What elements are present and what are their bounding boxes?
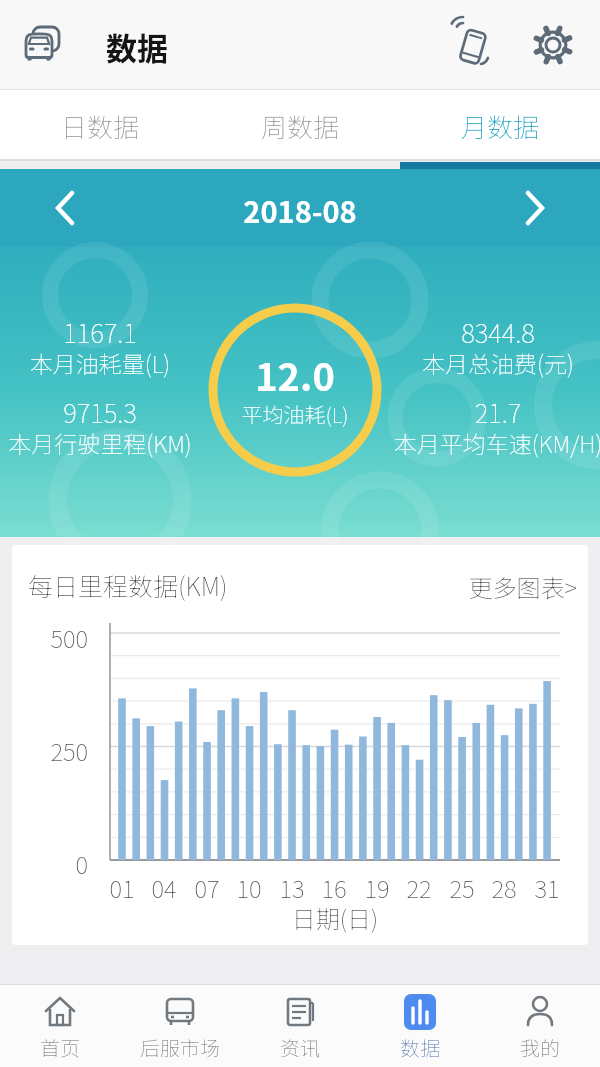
staticText: 本月总油费(元) [398,346,598,379]
staticText: 12.0 [195,347,395,402]
staticText: 数据 [360,1033,480,1062]
staticText: 2018-08 [200,189,400,231]
staticText: 首页 [0,1033,120,1062]
staticText: 31 [527,870,567,905]
button[interactable]: 更多图表> [449,569,577,601]
button[interactable] [448,18,496,72]
staticText: 250 [30,733,88,768]
staticText: 周数据 [261,107,340,145]
staticText: 本月平均车速(KM/H) [390,426,600,459]
button[interactable]: 数据 [360,985,480,1067]
staticText: 10 [229,870,269,905]
button[interactable] [530,22,576,68]
staticText: 数据 [106,24,246,69]
staticText: 我的 [480,1033,600,1062]
button[interactable]: 我的 [480,985,600,1067]
staticText: 28 [484,870,524,905]
staticText: 本月油耗量(L) [0,346,200,379]
staticText: 后服市场 [120,1033,240,1062]
button[interactable]: 资讯 [240,985,360,1067]
staticText: 07 [187,870,227,905]
staticText: 04 [144,870,184,905]
staticText: 8344.8 [398,313,598,351]
staticText: 更多图表> [449,569,577,601]
staticText: 21.7 [398,393,598,431]
staticText: 19 [357,870,397,905]
staticText: 01 [102,870,142,905]
button[interactable]: 周数据 [200,90,400,161]
button[interactable] [510,183,560,233]
staticText: 9715.3 [0,393,200,431]
staticText: 22 [399,870,439,905]
staticText: 13 [272,870,312,905]
staticText: 16 [314,870,354,905]
staticText: 日数据 [61,107,140,145]
button[interactable]: 日数据 [0,90,200,161]
button[interactable] [20,22,62,64]
staticText: 1167.1 [0,313,200,351]
staticText: 25 [442,870,482,905]
staticText: 月数据 [461,107,540,145]
button[interactable] [40,183,90,233]
staticText: 平均油耗(L) [195,399,395,429]
staticText: 0 [30,846,88,881]
staticText: 日期(日) [235,900,435,935]
button[interactable]: 首页 [0,985,120,1067]
staticText: 每日里程数据(KM) [28,567,328,603]
button[interactable]: 后服市场 [120,985,240,1067]
staticText: 资讯 [240,1033,360,1062]
staticText: 本月行驶里程(KM) [0,426,200,459]
staticText: 500 [30,620,88,655]
button[interactable]: 月数据 [400,90,600,161]
